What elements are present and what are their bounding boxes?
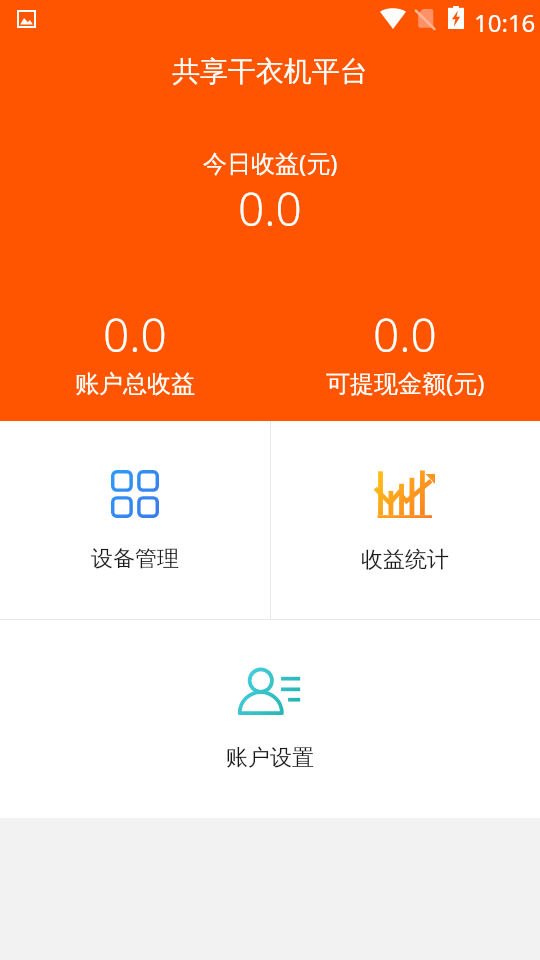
button[interactable]: 设备管理 xyxy=(0,421,270,620)
button[interactable]: 收益统计 xyxy=(270,421,540,620)
staticText: 账户设置 xyxy=(226,744,314,772)
staticText: 10:16 xyxy=(474,6,536,39)
staticText: 共享干衣机平台 xyxy=(172,54,368,89)
staticText: 今日收益(元) xyxy=(203,146,338,179)
staticText: 账户总收益 xyxy=(75,369,195,399)
staticText: 0.0 xyxy=(238,177,302,237)
staticText: 可提现金额(元) xyxy=(326,366,485,399)
staticText: 收益统计 xyxy=(361,546,449,574)
staticText: 设备管理 xyxy=(91,545,179,573)
staticText: 0.0 xyxy=(103,303,167,366)
button[interactable]: 账户设置 xyxy=(0,620,540,818)
staticText: 0.0 xyxy=(373,303,437,366)
